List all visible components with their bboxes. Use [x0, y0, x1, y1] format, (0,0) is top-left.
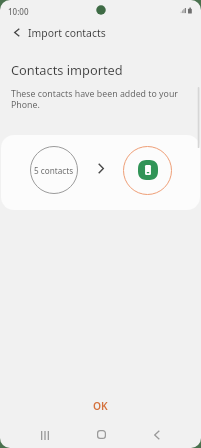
staticText: These contacts have been added to your P… [11, 88, 181, 111]
staticText: OK [93, 399, 108, 413]
button[interactable]: OK [0, 393, 201, 419]
staticText: 5 contacts [34, 165, 74, 176]
staticText: 10:00 [8, 6, 29, 17]
button[interactable]: Recents [30, 420, 60, 448]
button[interactable]: Navigate up [4, 19, 30, 45]
staticText: Contacts imported [11, 61, 123, 78]
button[interactable]: 5 contacts [30, 146, 78, 194]
button[interactable]: Phone [123, 146, 172, 195]
staticText: Import contacts [28, 26, 106, 40]
button[interactable]: Home [86, 419, 116, 448]
button[interactable]: Back [142, 420, 172, 448]
